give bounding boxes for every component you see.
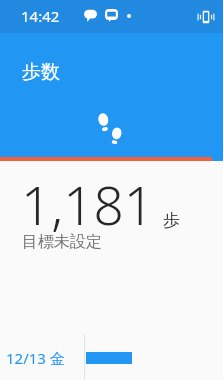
other: Vibrate mode (195, 6, 217, 28)
button[interactable]: 1,181 (0, 161, 223, 334)
staticText: 14:42 (21, 6, 60, 26)
button[interactable]: 歩数 (0, 33, 223, 161)
staticText: 歩 (163, 210, 180, 231)
staticText: 1,181 (21, 168, 154, 240)
staticText: 12/13 金 (6, 348, 65, 368)
button[interactable]: 12/13 金 (0, 334, 223, 380)
staticText: 目標未設定 (22, 232, 102, 252)
staticText: 歩数 (22, 60, 60, 84)
